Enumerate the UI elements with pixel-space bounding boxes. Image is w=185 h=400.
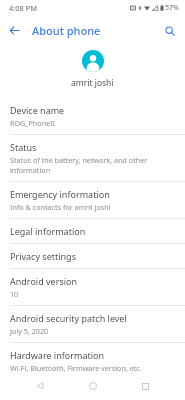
staticText: Hardware information bbox=[10, 349, 105, 361]
staticText: 4:08 PM bbox=[9, 3, 38, 13]
button[interactable]: Status bbox=[0, 135, 185, 181]
staticText: 57% bbox=[165, 3, 179, 13]
staticText: Software information bbox=[10, 386, 100, 394]
staticText: About phone bbox=[32, 23, 101, 38]
staticText: Status of the battery, network, and othe… bbox=[10, 155, 175, 175]
staticText: amrit joshi bbox=[71, 77, 114, 89]
button[interactable]: Back bbox=[27, 373, 53, 399]
staticText: Info & contacts for amrit joshi bbox=[10, 202, 111, 212]
button[interactable]: Legal information bbox=[0, 219, 185, 243]
staticText: Wi-Fi, Bluetooth, Firmware version, etc. bbox=[10, 363, 142, 373]
staticText: Android version bbox=[10, 275, 78, 287]
button[interactable]: Android version bbox=[0, 269, 185, 305]
staticText: Android security patch level bbox=[10, 312, 127, 324]
staticText: Emergency information bbox=[10, 188, 110, 200]
staticText: Status bbox=[10, 141, 37, 153]
button[interactable]: Software information bbox=[0, 380, 185, 400]
staticText: Device name bbox=[10, 104, 65, 116]
button[interactable]: Home bbox=[80, 373, 106, 399]
staticText: Legal information bbox=[10, 225, 86, 237]
staticText: July 5, 2020 bbox=[10, 326, 49, 336]
button[interactable]: Android security patch level bbox=[0, 306, 185, 342]
button[interactable]: Privacy settings bbox=[0, 244, 185, 268]
button[interactable]: Recents bbox=[132, 373, 158, 399]
button[interactable]: Hardware information bbox=[0, 343, 185, 379]
staticText: 10 bbox=[10, 289, 19, 299]
button[interactable]: Back bbox=[4, 20, 25, 41]
button[interactable]: Device name bbox=[0, 98, 185, 134]
button[interactable]: Search bbox=[159, 20, 180, 41]
staticText: ROG_PhoneII bbox=[10, 118, 56, 128]
staticText: Privacy settings bbox=[10, 250, 76, 262]
button[interactable]: Emergency information bbox=[0, 182, 185, 218]
